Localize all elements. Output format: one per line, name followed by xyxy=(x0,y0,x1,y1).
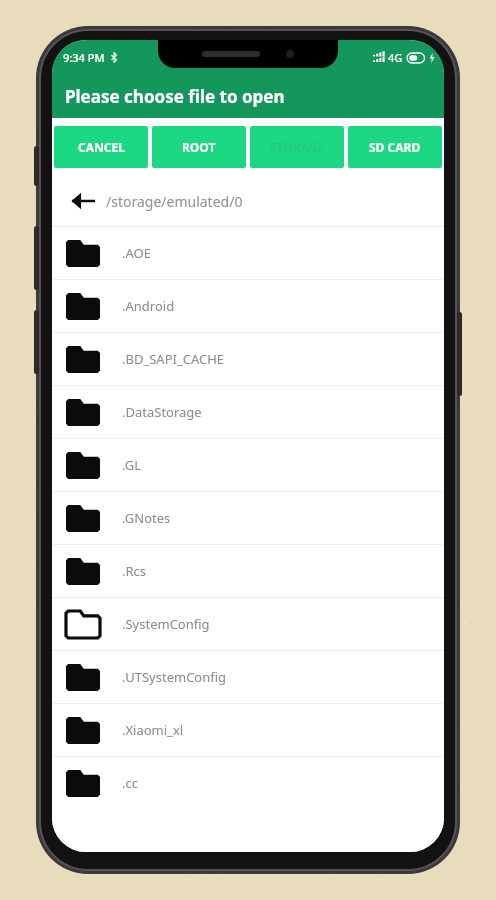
staticText: .SystemConfig xyxy=(122,615,210,633)
staticText: .Rcs xyxy=(122,562,147,580)
staticText: .BD_SAPI_CACHE xyxy=(122,350,225,368)
button[interactable]: .cc xyxy=(52,757,444,809)
staticText: .GNotes xyxy=(122,509,171,527)
button[interactable]: .AOE xyxy=(52,227,444,279)
button[interactable]: .Android xyxy=(52,280,444,332)
staticText: SD CARD xyxy=(369,139,421,155)
staticText: .Android xyxy=(122,297,175,315)
staticText: .DataStorage xyxy=(122,403,202,421)
button[interactable]: .Rcs xyxy=(52,545,444,597)
button[interactable]: .BD_SAPI_CACHE xyxy=(52,333,444,385)
button[interactable]: SD CARD xyxy=(348,126,442,168)
staticText: .GL xyxy=(122,456,142,474)
staticText: 9:34 PM xyxy=(63,50,105,65)
button[interactable]: .UTSystemConfig xyxy=(52,651,444,703)
button[interactable]: STORAGE xyxy=(250,126,344,168)
button[interactable]: Back xyxy=(52,176,444,226)
button[interactable]: .GL xyxy=(52,439,444,491)
staticText: Please choose file to open xyxy=(65,85,285,108)
staticText: .Xiaomi_xl xyxy=(122,721,184,739)
button[interactable]: .SystemConfig xyxy=(52,598,444,650)
staticText: STORAGE xyxy=(270,139,325,155)
button[interactable]: ROOT xyxy=(152,126,246,168)
button[interactable]: CANCEL xyxy=(54,126,148,168)
staticText: /storage/emulated/0 xyxy=(106,192,243,211)
button[interactable]: .Xiaomi_xl xyxy=(52,704,444,756)
staticText: .UTSystemConfig xyxy=(122,668,227,686)
staticText: .cc xyxy=(122,774,138,792)
staticText: CANCEL xyxy=(78,139,125,155)
button[interactable]: .GNotes xyxy=(52,492,444,544)
other: Back xyxy=(68,186,98,216)
staticText: ROOT xyxy=(182,139,216,155)
staticText: .AOE xyxy=(122,244,151,262)
staticText: 4G xyxy=(388,50,403,65)
button[interactable]: .DataStorage xyxy=(52,386,444,438)
